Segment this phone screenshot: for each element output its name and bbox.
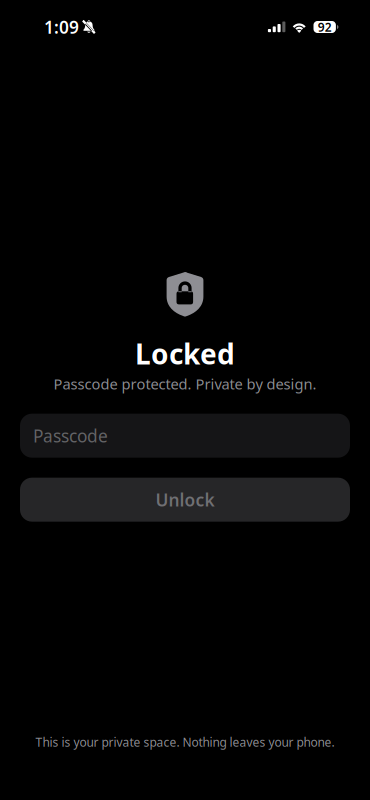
staticText: Passcode protected. Private by design. xyxy=(53,374,316,394)
staticText: This is your private space. Nothing leav… xyxy=(35,734,334,750)
staticText: Locked xyxy=(135,335,235,372)
staticText: 92 xyxy=(318,19,332,35)
staticText: 1:09 xyxy=(44,15,79,38)
button[interactable]: Unlock xyxy=(20,478,350,522)
staticText: Passcode xyxy=(33,424,108,447)
button[interactable]: Passcode xyxy=(20,414,350,458)
staticText: Unlock xyxy=(155,488,214,511)
